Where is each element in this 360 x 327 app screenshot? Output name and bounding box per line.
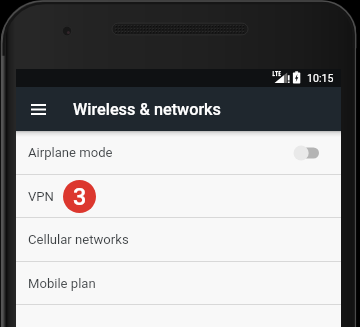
button[interactable]: Open navigation drawer [22,87,54,131]
button[interactable]: VPN [16,175,341,217]
staticText: 3 [73,183,87,210]
staticText: Cellular networks [28,232,129,247]
button[interactable]: Airplane mode toggle [293,143,319,163]
button[interactable]: Mobile plan [16,262,341,304]
staticText: Mobile plan [28,276,96,291]
button[interactable]: Airplane mode [16,131,341,174]
staticText: 10:15 [307,72,334,84]
staticText: Airplane mode [28,145,113,160]
button[interactable]: Cellular networks [16,218,341,261]
staticText: Wireless & networks [73,100,221,119]
staticText: VPN [28,189,54,204]
